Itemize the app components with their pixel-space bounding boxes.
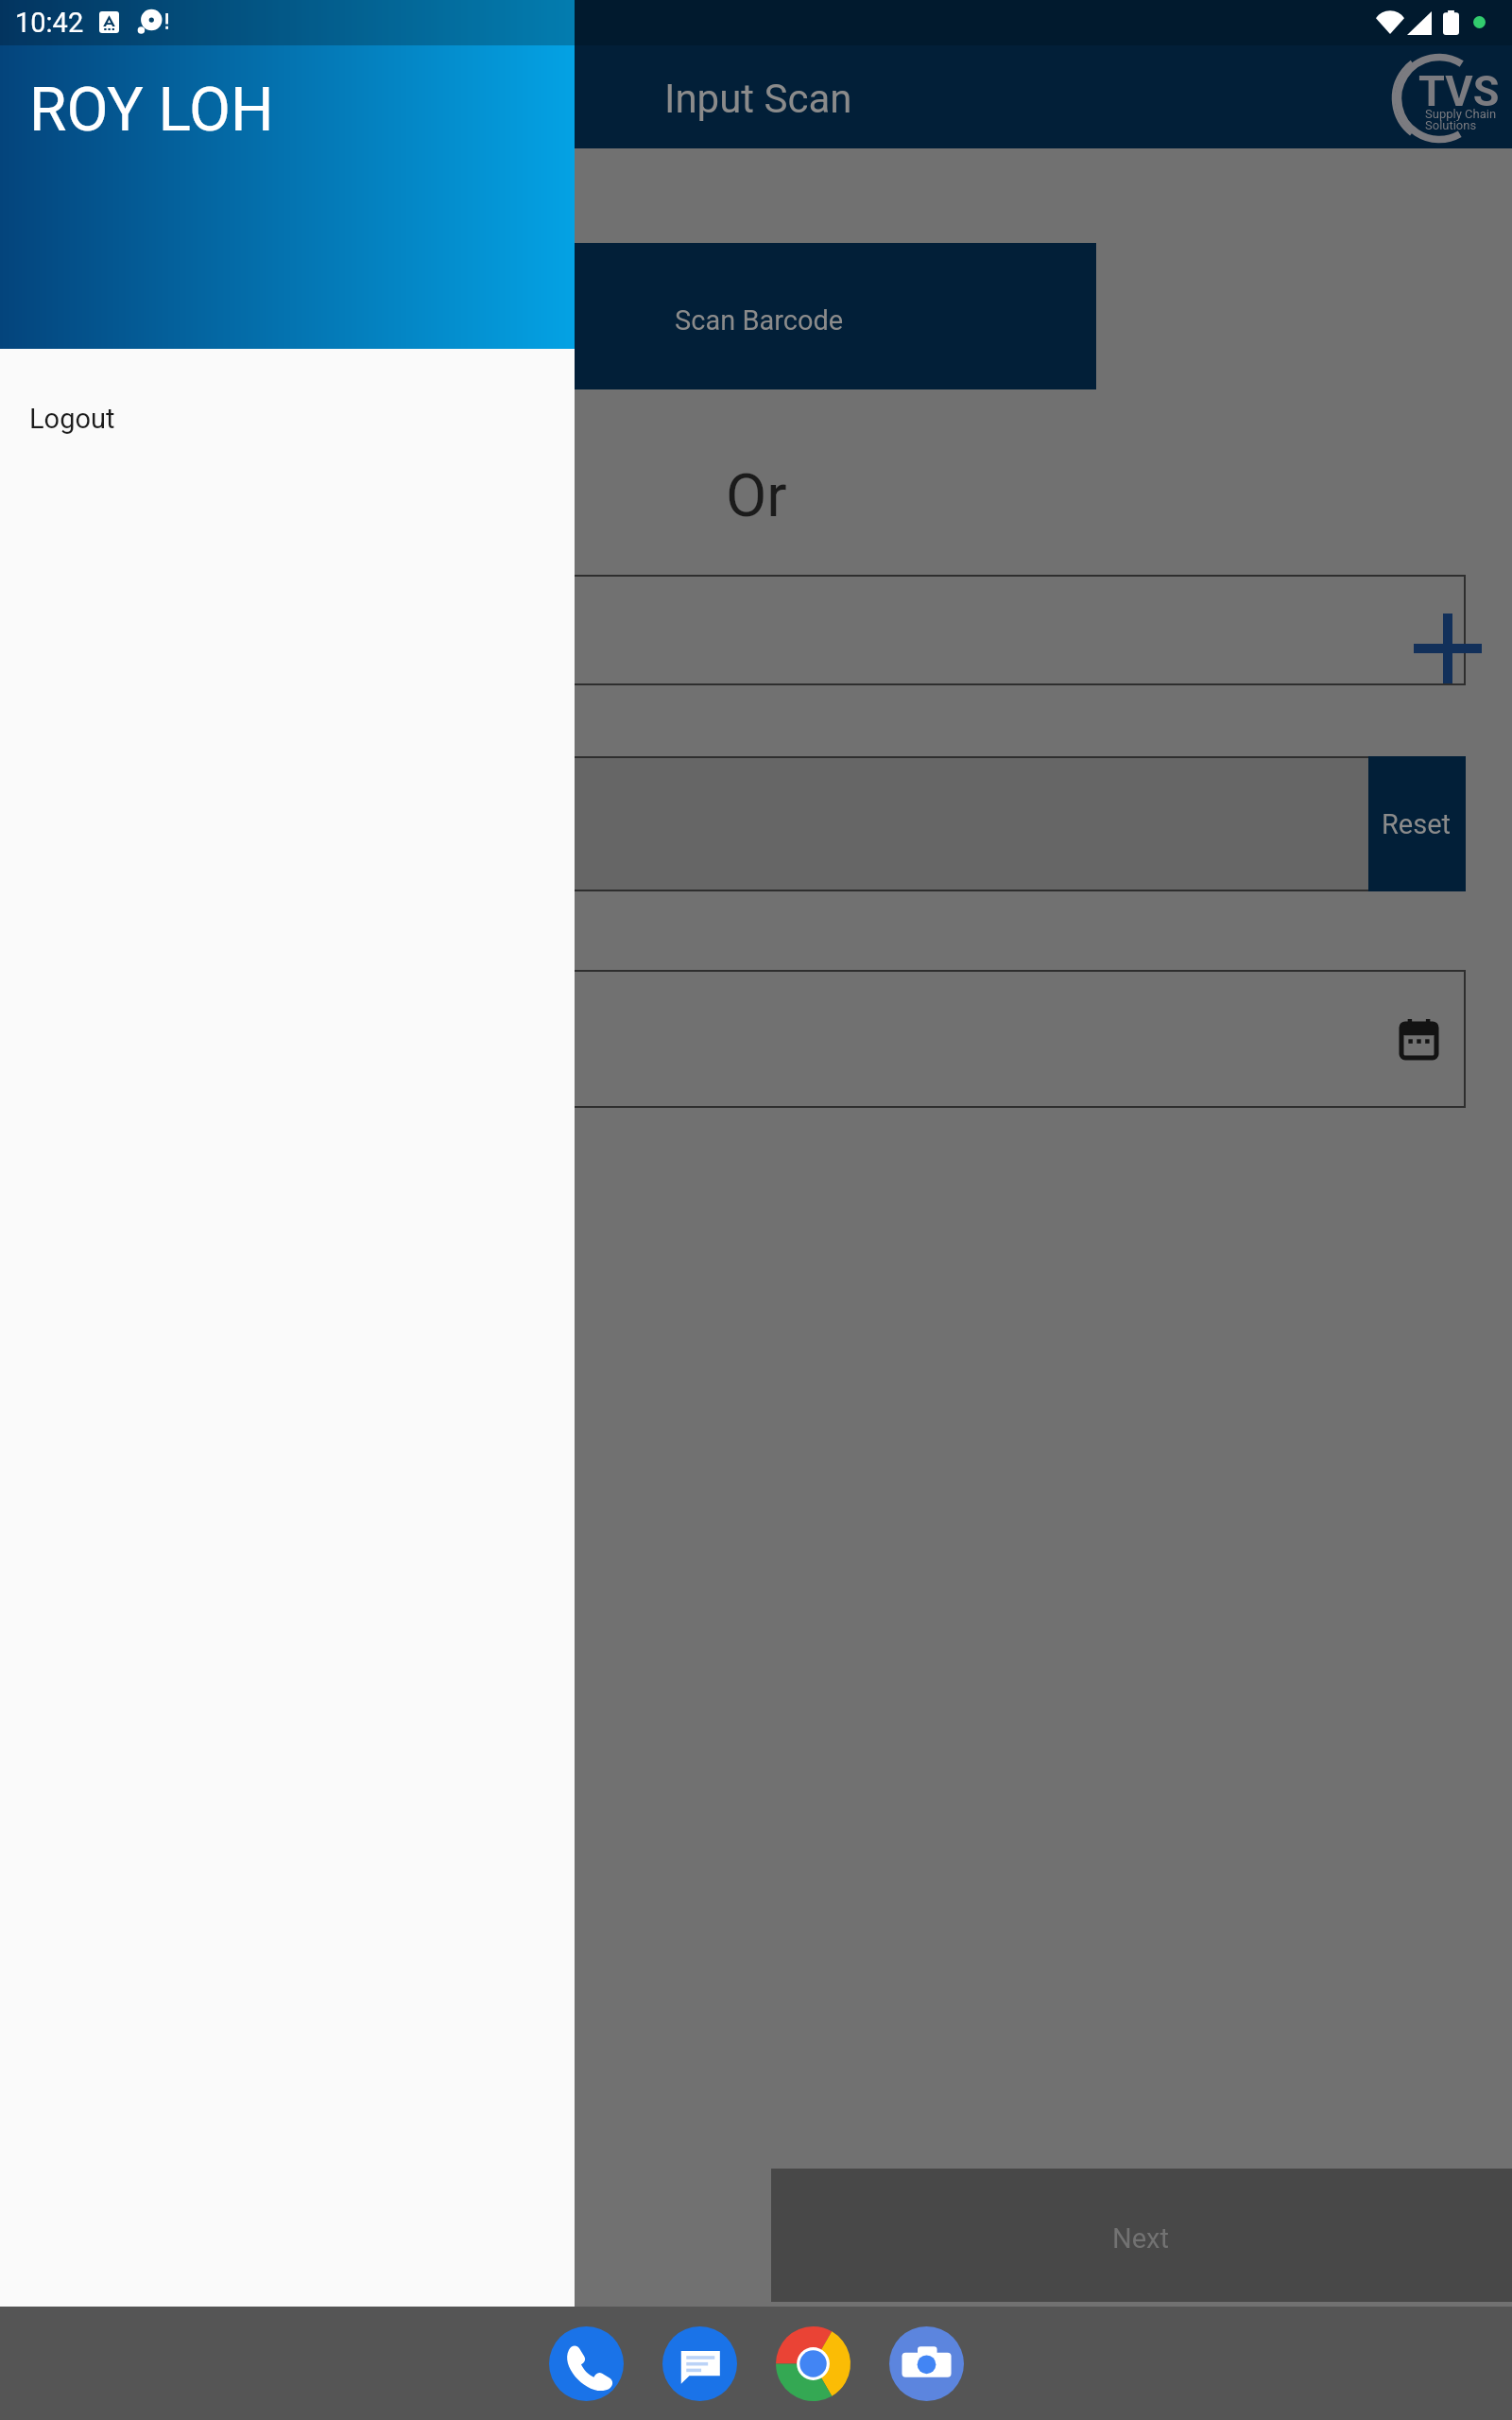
staticText: TVS: [1418, 66, 1500, 116]
staticText: Supply Chain: [1425, 107, 1497, 121]
button[interactable]: Pick date: [1401, 1019, 1436, 1058]
staticText: Or: [726, 461, 787, 531]
button[interactable]: [312, 756, 1466, 891]
staticText: Next: [1112, 2222, 1169, 2255]
button[interactable]: Reset: [1368, 756, 1466, 891]
staticText: ROY LOH: [29, 75, 274, 146]
button[interactable]: Messages: [662, 2326, 737, 2401]
button[interactable]: Scan Barcode: [416, 243, 1096, 389]
staticText: Logout: [29, 403, 115, 435]
staticText: Input Scan: [664, 76, 852, 122]
button[interactable]: Logout: [0, 349, 575, 489]
button[interactable]: TVS Supply Chain Solutions: [1381, 48, 1479, 147]
button[interactable]: Add: [1414, 614, 1482, 683]
button[interactable]: [312, 970, 1466, 1108]
button[interactable]: Phone: [549, 2326, 624, 2401]
staticText: Solutions: [1425, 118, 1477, 132]
staticText: 10:42: [15, 7, 84, 39]
button[interactable]: Camera: [889, 2326, 964, 2401]
button[interactable]: Chrome: [776, 2326, 850, 2401]
staticText: Scan Barcode: [675, 304, 844, 337]
staticText: Reset: [1382, 808, 1452, 840]
button[interactable]: [312, 575, 1466, 685]
